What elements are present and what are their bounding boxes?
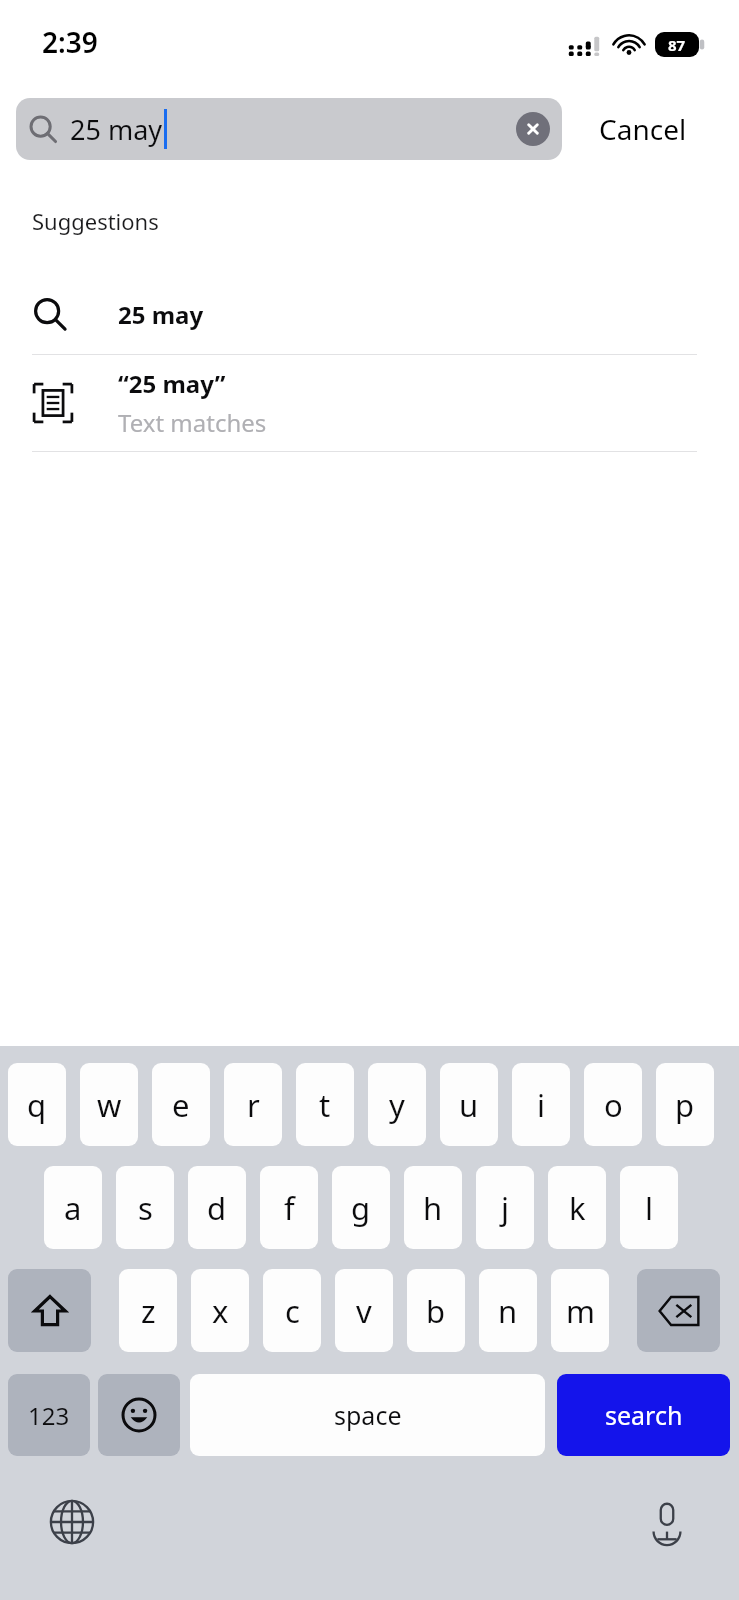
button[interactable]: d <box>188 1166 246 1249</box>
staticText: search <box>605 1398 683 1432</box>
staticText: space <box>334 1398 402 1432</box>
staticText: z <box>141 1290 156 1332</box>
staticText: b <box>426 1290 446 1332</box>
staticText: l <box>645 1187 653 1229</box>
button[interactable]: t <box>296 1063 354 1146</box>
button[interactable]: o <box>584 1063 642 1146</box>
button[interactable]: b <box>407 1269 465 1352</box>
button[interactable]: Shift <box>8 1269 91 1352</box>
button[interactable]: search <box>557 1374 730 1456</box>
staticText: 87 <box>668 35 686 55</box>
staticText: w <box>97 1084 122 1126</box>
button[interactable]: u <box>440 1063 498 1146</box>
staticText: v <box>356 1290 372 1332</box>
staticText: y <box>389 1084 405 1126</box>
staticText: d <box>207 1187 227 1229</box>
staticText: s <box>138 1187 153 1229</box>
staticText: p <box>675 1084 695 1126</box>
staticText: 2:39 <box>42 23 98 61</box>
button[interactable]: x <box>191 1269 249 1352</box>
staticText: g <box>351 1187 371 1229</box>
staticText: c <box>285 1290 300 1332</box>
button[interactable]: z <box>119 1269 177 1352</box>
button[interactable]: e <box>152 1063 210 1146</box>
button[interactable]: Emoji <box>98 1374 180 1456</box>
staticText: 25 may <box>118 298 204 331</box>
button[interactable]: Backspace <box>637 1269 720 1352</box>
staticText: 123 <box>28 1399 70 1432</box>
button[interactable]: y <box>368 1063 426 1146</box>
staticText: Suggestions <box>32 206 159 236</box>
button[interactable]: w <box>80 1063 138 1146</box>
button[interactable]: s <box>116 1166 174 1249</box>
staticText: 25 may <box>70 111 163 148</box>
button[interactable]: space <box>190 1374 545 1456</box>
staticText: h <box>423 1187 443 1229</box>
button[interactable]: f <box>260 1166 318 1249</box>
button[interactable]: q <box>8 1063 66 1146</box>
staticText: Text matches <box>118 406 267 439</box>
staticText: e <box>172 1084 190 1126</box>
staticText: m <box>566 1290 595 1332</box>
button[interactable]: r <box>224 1063 282 1146</box>
button[interactable]: c <box>263 1269 321 1352</box>
button[interactable]: v <box>335 1269 393 1352</box>
button[interactable]: Cancel <box>562 110 723 148</box>
button[interactable]: n <box>479 1269 537 1352</box>
button[interactable]: Voice input <box>635 1490 699 1554</box>
button[interactable]: j <box>476 1166 534 1249</box>
staticText: q <box>27 1084 47 1126</box>
button[interactable]: 123 <box>8 1374 90 1456</box>
staticText: t <box>319 1084 331 1126</box>
button[interactable]: 25 may <box>16 98 562 160</box>
staticText: f <box>284 1187 295 1229</box>
button[interactable]: k <box>548 1166 606 1249</box>
staticText: x <box>212 1290 229 1332</box>
button[interactable]: l <box>620 1166 678 1249</box>
staticText: k <box>569 1187 586 1229</box>
staticText: n <box>498 1290 518 1332</box>
staticText: i <box>537 1084 545 1126</box>
button[interactable]: Clear text <box>516 112 550 146</box>
button[interactable]: p <box>656 1063 714 1146</box>
staticText: u <box>459 1084 479 1126</box>
staticText: a <box>64 1187 82 1229</box>
button[interactable]: h <box>404 1166 462 1249</box>
staticText: j <box>501 1187 509 1229</box>
button[interactable]: m <box>551 1269 609 1352</box>
button[interactable]: i <box>512 1063 570 1146</box>
button[interactable]: a <box>44 1166 102 1249</box>
button[interactable]: 25 may <box>0 274 739 354</box>
button[interactable]: Change keyboard language <box>40 1490 104 1554</box>
staticText: o <box>604 1084 623 1126</box>
staticText: “25 may” <box>118 367 226 400</box>
button[interactable]: g <box>332 1166 390 1249</box>
staticText: Cancel <box>599 110 687 148</box>
staticText: r <box>247 1084 260 1126</box>
button[interactable]: “25 may” <box>0 355 739 451</box>
